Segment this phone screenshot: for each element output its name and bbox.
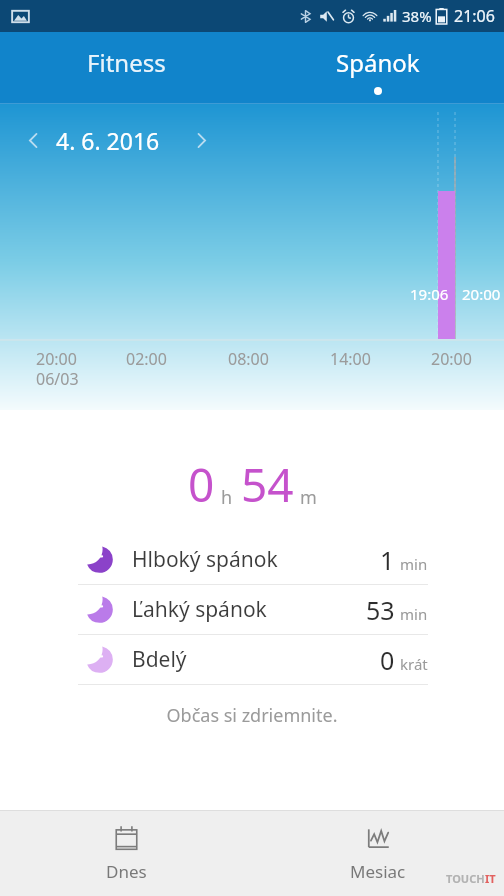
- other: Today: [113, 825, 140, 852]
- staticText: 1: [380, 543, 395, 577]
- button[interactable]: Ľahký spánok: [0, 585, 504, 634]
- staticText: 20:00: [431, 348, 472, 370]
- button[interactable]: Fitness: [0, 32, 252, 104]
- staticText: 20:00: [36, 348, 77, 370]
- staticText: 0: [380, 643, 395, 677]
- staticText: 06/03: [36, 368, 79, 390]
- staticText: 20:00: [462, 284, 501, 304]
- staticText: Mesiac: [350, 860, 406, 883]
- button[interactable]: Month: [252, 811, 504, 896]
- staticText: 21:06: [454, 5, 495, 27]
- staticText: Dnes: [106, 860, 147, 883]
- button[interactable]: Next day: [180, 119, 222, 161]
- staticText: h: [221, 485, 233, 510]
- staticText: TOUCH: [446, 871, 485, 886]
- button[interactable]: Previous day: [12, 119, 54, 161]
- staticText: 53: [366, 593, 395, 627]
- staticText: IT: [485, 871, 496, 886]
- staticText: 02:00: [126, 348, 167, 370]
- staticText: m: [300, 485, 317, 510]
- staticText: Fitness: [87, 46, 166, 79]
- button[interactable]: Today: [0, 811, 252, 896]
- staticText: Spánok: [336, 46, 420, 79]
- staticText: Hlboký spánok: [132, 545, 278, 574]
- staticText: 4. 6. 2016: [56, 125, 160, 156]
- staticText: min: [400, 554, 428, 574]
- staticText: min: [400, 604, 428, 624]
- staticText: 54: [241, 453, 294, 516]
- button[interactable]: Bdelý: [0, 635, 504, 684]
- staticText: Bdelý: [132, 645, 187, 674]
- staticText: 19:06: [410, 284, 449, 304]
- staticText: 38%: [402, 6, 432, 26]
- staticText: 14:00: [330, 348, 371, 370]
- other: Month: [365, 825, 392, 852]
- button[interactable]: Hlboký spánok: [0, 535, 504, 584]
- staticText: Ľahký spánok: [132, 595, 267, 624]
- button[interactable]: Spánok: [252, 32, 504, 104]
- staticText: 0: [188, 453, 215, 516]
- staticText: krát: [400, 654, 428, 674]
- staticText: 08:00: [228, 348, 269, 370]
- staticText: Občas si zdriemnite.: [0, 703, 504, 728]
